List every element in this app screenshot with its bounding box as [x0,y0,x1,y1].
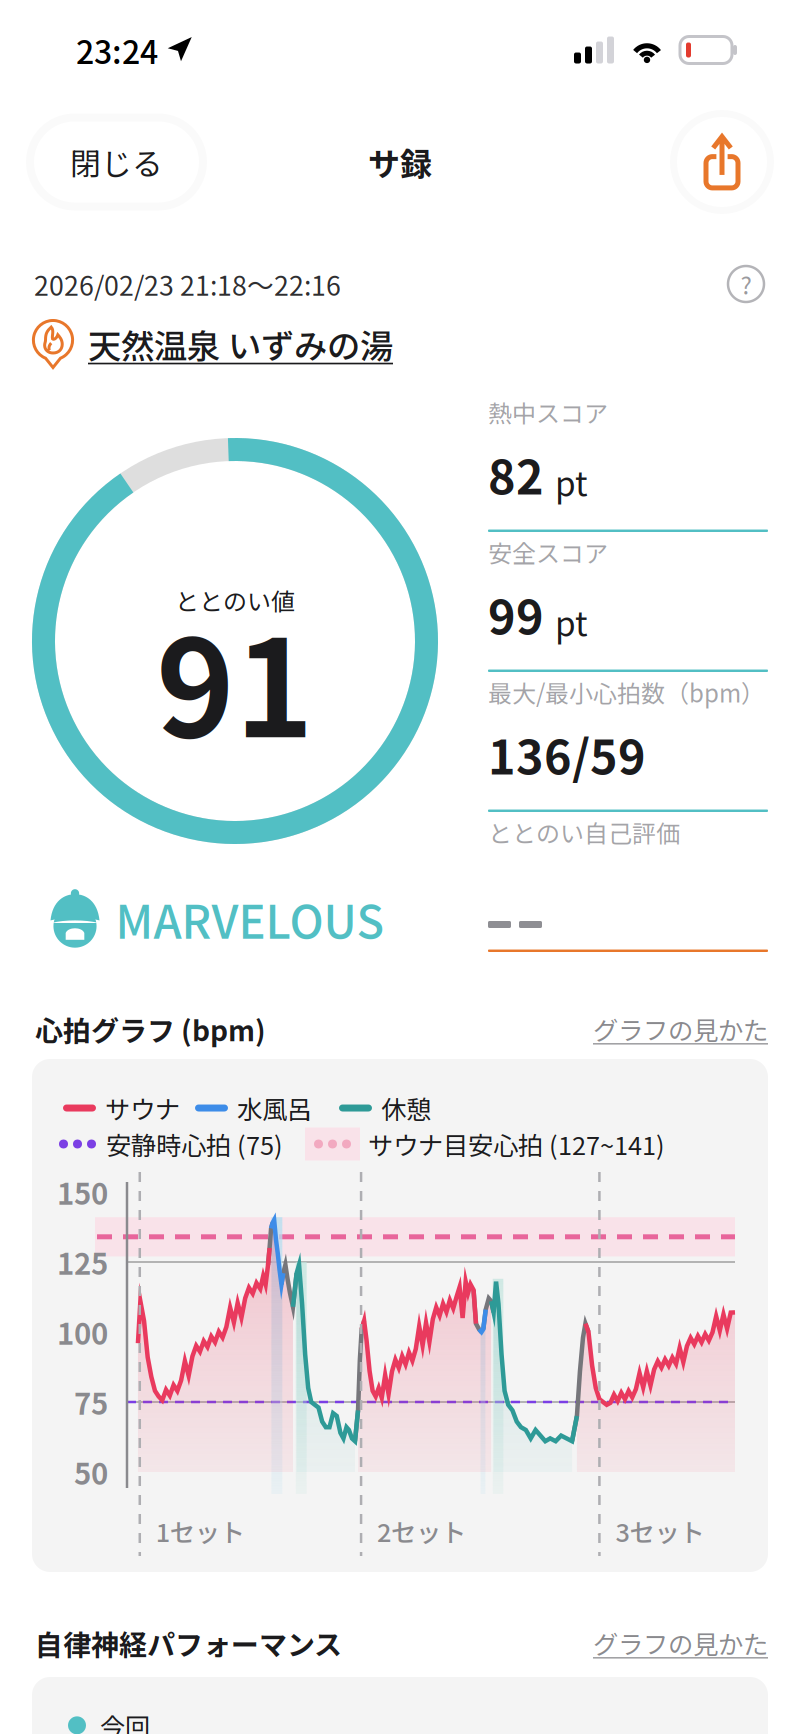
staticText: 2026/02/23 21:18〜22:16 [34,265,341,303]
button[interactable]: グラフの見かた [593,1005,768,1053]
staticText: 136/59 [488,720,646,788]
button[interactable]: ヘルプ [724,262,768,306]
staticText: 水風呂 [237,1090,312,1126]
staticText: 休憩 [381,1090,431,1126]
staticText: 2セット [377,1513,466,1549]
staticText: 自律神経パフォーマンス [35,1623,342,1663]
staticText: 82 [488,440,544,508]
staticText: 91 [156,582,314,776]
staticText: 心拍グラフ (bpm) [35,1009,266,1049]
staticText: 熱中スコア [488,395,608,429]
staticText: 閉じる [70,140,163,184]
staticText: 100 [57,1311,108,1353]
staticText: MARVELOUS [115,886,384,952]
staticText: ととのい値 [175,583,295,617]
staticText: グラフの見かた [593,1011,768,1047]
staticText: グラフの見かた [593,1625,768,1661]
staticText: 安静時心拍 (75) [106,1126,283,1162]
staticText: 今回 [100,1707,150,1734]
staticText: 50 [74,1451,108,1493]
staticText: 150 [57,1171,108,1213]
staticText: 125 [57,1241,108,1283]
staticText: 1セット [156,1513,245,1549]
staticText: サウナ目安心拍 (127~141) [368,1126,665,1162]
button[interactable]: 天然温泉 いずみの湯 [0,306,800,372]
staticText: 75 [74,1381,108,1423]
staticText: 3セット [615,1513,704,1549]
staticText: 23:24 [76,27,158,73]
staticText: 天然温泉 いずみの湯 [88,320,393,368]
staticText: 安全スコア [488,535,608,569]
button[interactable]: 共有 [670,110,774,214]
staticText: pt [555,598,588,646]
button[interactable]: 閉じる [26,113,207,210]
staticText: ? [740,267,751,301]
staticText: 最大/最小心拍数（bpm） [488,675,765,709]
staticText: サ録 [368,139,432,185]
button[interactable]: グラフの見かた [593,1619,768,1667]
staticText: ととのい自己評価 [488,815,680,849]
staticText: 99 [488,580,544,648]
staticText: pt [555,458,588,506]
staticText: サウナ [105,1090,180,1126]
